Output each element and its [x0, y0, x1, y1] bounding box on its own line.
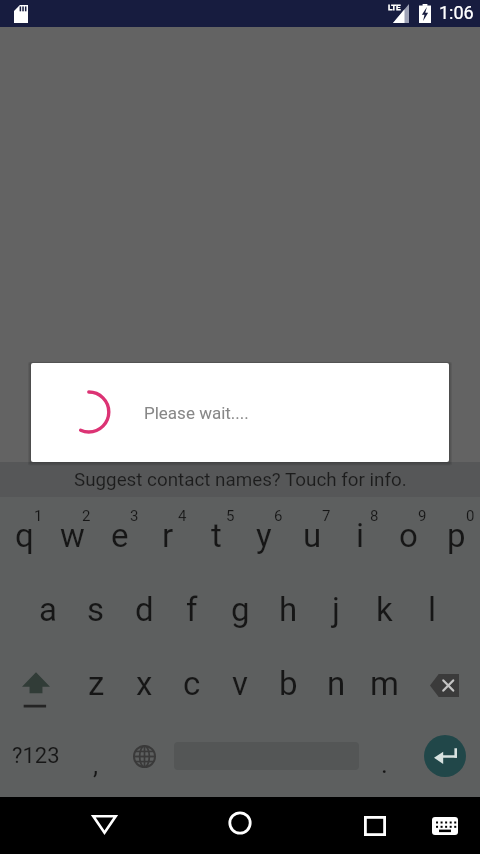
staticText: a	[39, 590, 57, 629]
staticText: y	[256, 516, 272, 555]
button[interactable]: 6	[240, 509, 288, 565]
staticText: s	[87, 590, 105, 629]
staticText: 4	[178, 507, 187, 525]
button[interactable]: Please wait....	[31, 363, 449, 462]
button[interactable]: ,	[72, 726, 120, 786]
staticText: 1	[34, 507, 43, 525]
staticText: x	[136, 664, 153, 703]
staticText: Please wait....	[144, 403, 249, 423]
button[interactable]: 7	[288, 509, 336, 565]
button[interactable]: 2	[48, 509, 96, 565]
staticText: ?123	[12, 743, 60, 769]
button[interactable]: m	[360, 657, 408, 713]
staticText: 5	[226, 507, 235, 525]
button[interactable]: z	[72, 657, 120, 713]
button[interactable]: Enter	[408, 726, 480, 786]
staticText: w	[60, 516, 85, 555]
staticText: t	[211, 516, 222, 555]
staticText: r	[162, 516, 174, 555]
staticText: i	[356, 516, 365, 555]
staticText: 2	[82, 507, 91, 525]
button[interactable]: Change keyboard language	[120, 726, 168, 786]
button[interactable]: Back	[92, 815, 117, 834]
button[interactable]: v	[216, 657, 264, 713]
staticText: 9	[418, 507, 427, 525]
button[interactable]: h	[264, 583, 312, 639]
staticText: c	[183, 664, 201, 703]
staticText: p	[447, 516, 466, 555]
button[interactable]: n	[312, 657, 360, 713]
button[interactable]: Switch keyboard	[432, 817, 458, 835]
staticText: h	[279, 590, 298, 629]
button[interactable]: b	[264, 657, 312, 713]
button[interactable]: Suggest contact names? Touch for info.	[0, 462, 480, 497]
staticText: d	[135, 590, 154, 629]
button[interactable]: g	[216, 583, 264, 639]
staticText: 0	[466, 507, 475, 525]
button[interactable]: k	[360, 583, 408, 639]
staticText: u	[303, 516, 322, 555]
button[interactable]: j	[312, 583, 360, 639]
staticText: b	[279, 664, 298, 703]
staticText: 7	[322, 507, 331, 525]
button[interactable]: Backspace	[408, 657, 480, 713]
button[interactable]: Home	[228, 811, 252, 835]
staticText: f	[186, 590, 198, 629]
staticText: o	[399, 516, 418, 555]
staticText: 3	[130, 507, 139, 525]
staticText: v	[232, 664, 248, 703]
staticText: n	[327, 664, 346, 703]
staticText: LTE	[388, 3, 401, 12]
staticText: Suggest contact names? Touch for info.	[74, 469, 407, 491]
staticText: l	[428, 590, 437, 629]
staticText: g	[231, 590, 250, 629]
staticText: ,	[93, 750, 99, 780]
button[interactable]: 4	[144, 509, 192, 565]
staticText: .	[381, 749, 388, 779]
staticText: e	[111, 516, 129, 555]
button[interactable]: x	[120, 657, 168, 713]
button[interactable]: 1	[0, 509, 48, 565]
button[interactable]: f	[168, 583, 216, 639]
button[interactable]: 8	[336, 509, 384, 565]
button[interactable]: Space	[168, 726, 360, 786]
button[interactable]: s	[72, 583, 120, 639]
staticText: z	[88, 664, 105, 703]
staticText: q	[15, 516, 34, 555]
staticText: 8	[370, 507, 379, 525]
button[interactable]: 9	[384, 509, 432, 565]
staticText: m	[370, 664, 399, 703]
staticText: 1:06	[439, 2, 474, 23]
button[interactable]: c	[168, 657, 216, 713]
button[interactable]: ?123	[0, 726, 72, 786]
button[interactable]: a	[24, 583, 72, 639]
staticText: k	[376, 590, 393, 629]
button[interactable]: 0	[432, 509, 480, 565]
staticText: 6	[274, 507, 283, 525]
button[interactable]: l	[408, 583, 456, 639]
staticText: j	[332, 590, 340, 629]
button[interactable]: Shift	[0, 657, 72, 713]
button[interactable]: d	[120, 583, 168, 639]
button[interactable]: Recent apps	[364, 816, 386, 836]
button[interactable]: 3	[96, 509, 144, 565]
button[interactable]: 5	[192, 509, 240, 565]
